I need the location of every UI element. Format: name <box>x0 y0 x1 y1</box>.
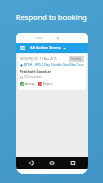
button[interactable]: All Active Items <box>30 45 66 51</box>
button[interactable]: 02:30 PM, 09 - 11 Nov 2015 <box>18 54 86 90</box>
button[interactable]: Back <box>25 157 37 169</box>
staticText: Prabhath Gaonkar <box>20 69 51 74</box>
staticText: Pending <box>71 57 82 61</box>
button[interactable]: Reject <box>38 81 52 87</box>
staticText: 02:30 PM, 09 - 11 Nov 2015 <box>20 57 57 61</box>
staticText: Accept <box>25 82 35 86</box>
staticText: Reject <box>43 82 52 86</box>
button[interactable]: Open navigation menu <box>19 45 26 52</box>
staticText: BTSH - SRG 2 Day Shuttle Goa Bike Tour <box>24 63 84 67</box>
staticText: Respond to booking request 24/7 <box>4 12 99 22</box>
button[interactable]: Accept <box>20 81 35 87</box>
staticText: All Active Items <box>30 45 61 51</box>
button[interactable]: Home <box>46 157 58 169</box>
staticText: 3 Participants <box>24 75 42 79</box>
button[interactable]: Recent apps <box>67 157 79 169</box>
